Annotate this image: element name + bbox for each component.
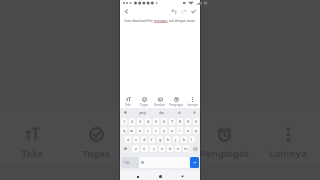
button[interactable]: 0 xyxy=(193,118,199,125)
button[interactable]: d xyxy=(141,136,147,143)
staticText: Lainnya xyxy=(187,103,198,107)
button[interactable]: p xyxy=(193,127,199,134)
staticText: 3 xyxy=(139,119,142,124)
button[interactable]: x xyxy=(141,145,148,152)
button[interactable]: 6 xyxy=(161,118,167,125)
button[interactable]: 8 xyxy=(177,118,183,125)
button[interactable]: w xyxy=(129,127,135,134)
staticText: p xyxy=(195,128,198,133)
button[interactable]: Language xyxy=(139,157,146,168)
staticText: c xyxy=(153,146,155,151)
button[interactable]: e xyxy=(137,127,143,134)
button[interactable]: Shift xyxy=(121,145,130,152)
button[interactable]: Keyboard settings xyxy=(123,110,128,115)
button[interactable]: Redo xyxy=(179,7,188,16)
staticText: 4 xyxy=(147,119,150,124)
button[interactable]: Undo xyxy=(169,7,178,16)
button[interactable]: 2 xyxy=(129,118,135,125)
button[interactable]: i xyxy=(177,127,183,134)
button[interactable]: h xyxy=(165,136,171,143)
staticText: Teks xyxy=(125,103,131,107)
staticText: h xyxy=(167,137,170,142)
button[interactable]: Tugas xyxy=(136,96,152,108)
staticText: . xyxy=(186,161,187,165)
staticText: a xyxy=(127,137,130,142)
button[interactable]: Gambar xyxy=(128,0,192,180)
button[interactable]: Tugas xyxy=(64,0,128,180)
staticText: y xyxy=(163,128,166,133)
button[interactable]: m xyxy=(183,145,189,152)
button[interactable]: r xyxy=(145,127,151,134)
button[interactable]: a xyxy=(125,136,131,143)
staticText: t xyxy=(155,128,157,133)
button[interactable]: 1 xyxy=(121,118,127,125)
button[interactable]: l xyxy=(189,136,195,143)
button[interactable]: Voice input xyxy=(192,110,197,115)
staticText: Pengingat xyxy=(200,147,249,160)
staticText: j xyxy=(175,137,177,142)
staticText: g xyxy=(159,137,162,142)
button[interactable]: Back xyxy=(178,172,187,180)
staticText: Teks xyxy=(21,147,43,160)
button[interactable]: Lainnya xyxy=(184,96,200,108)
staticText: 5 xyxy=(155,119,158,124)
staticText: d xyxy=(143,137,146,142)
button[interactable]: o xyxy=(185,127,191,134)
button[interactable]: Pengingat xyxy=(168,96,184,108)
button[interactable]: n xyxy=(175,145,181,152)
button[interactable]: c xyxy=(150,145,157,152)
staticText: Gambar xyxy=(141,147,179,160)
staticText: dan xyxy=(159,111,165,115)
staticText: 8 xyxy=(179,119,182,124)
button[interactable]: s xyxy=(133,136,139,143)
button[interactable]: 4 xyxy=(145,118,151,125)
button[interactable]: 7 xyxy=(169,118,175,125)
button[interactable]: Back xyxy=(122,7,131,16)
button[interactable]: q xyxy=(121,127,127,134)
button[interactable]: y xyxy=(161,127,167,134)
staticText: tuk dengan musa xyxy=(168,19,196,23)
button[interactable]: 9 xyxy=(185,118,191,125)
button[interactable]: 3 xyxy=(137,118,143,125)
button[interactable]: z xyxy=(132,145,139,152)
staticText: Cara download film xyxy=(124,19,154,23)
button[interactable]: Recents xyxy=(133,172,142,180)
staticText: yang xyxy=(139,111,146,115)
button[interactable]: g xyxy=(157,136,163,143)
staticText: l xyxy=(191,137,193,142)
button[interactable]: k xyxy=(181,136,187,143)
staticText: u xyxy=(171,128,174,133)
button[interactable]: Home xyxy=(156,172,165,180)
button[interactable]: t xyxy=(153,127,159,134)
staticText: n xyxy=(177,146,180,151)
staticText: o xyxy=(187,128,190,133)
staticText: 0 xyxy=(195,119,198,124)
staticText: Gambar xyxy=(154,103,166,107)
staticText: Lainnya xyxy=(269,147,307,160)
button[interactable]: v xyxy=(159,145,165,152)
button[interactable]: Gambar xyxy=(152,96,168,108)
staticText: ?123 xyxy=(124,161,130,165)
staticText: v xyxy=(161,146,164,151)
staticText: di xyxy=(178,111,181,115)
staticText: i xyxy=(179,128,181,133)
button[interactable]: Teks xyxy=(120,96,136,108)
button[interactable]: u xyxy=(169,127,175,134)
button[interactable]: , xyxy=(133,157,139,168)
staticText: 6 xyxy=(163,119,166,124)
button[interactable]: Enter xyxy=(190,157,199,168)
button[interactable]: j xyxy=(173,136,179,143)
button[interactable]: 5 xyxy=(153,118,159,125)
button[interactable]: f xyxy=(149,136,155,143)
button[interactable]: Done xyxy=(189,7,198,16)
staticText: temukan xyxy=(154,19,168,23)
button[interactable]: Backspace xyxy=(191,145,199,152)
button[interactable]: Pengingat xyxy=(192,0,256,180)
button[interactable]: ?123 xyxy=(121,157,133,168)
button[interactable]: b xyxy=(167,145,173,152)
staticText: 1 xyxy=(123,119,126,124)
